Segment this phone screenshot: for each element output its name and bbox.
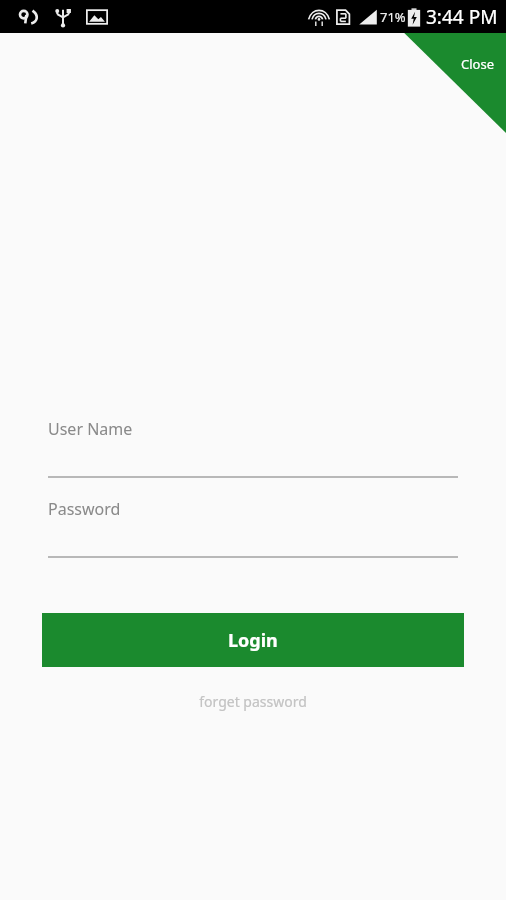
staticText: 3:44 PM xyxy=(426,4,498,30)
staticText: User Name xyxy=(48,418,133,440)
staticText: Login xyxy=(228,628,278,653)
staticText: 71% xyxy=(380,8,406,26)
button[interactable]: Login xyxy=(42,613,464,667)
staticText: forget password xyxy=(199,692,307,711)
staticText: Close xyxy=(461,55,494,73)
staticText: Password xyxy=(48,498,121,520)
button[interactable]: User Name xyxy=(48,418,458,478)
button[interactable]: Password xyxy=(48,498,458,558)
button[interactable]: forget password xyxy=(42,686,464,716)
button[interactable]: Close xyxy=(400,33,506,133)
